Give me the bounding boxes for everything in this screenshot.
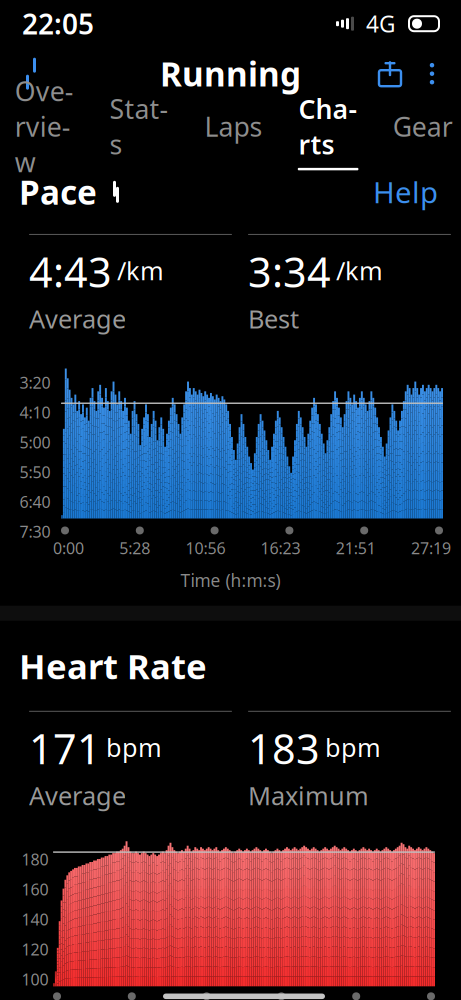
staticText: 7:30 <box>19 521 50 542</box>
button[interactable]: Share <box>367 51 413 97</box>
staticText: 100 <box>21 969 48 990</box>
staticText: 16:23 <box>261 537 301 559</box>
staticText: 3:20 <box>19 372 50 393</box>
staticText: 4:43 <box>29 244 112 299</box>
staticText: Overview <box>15 73 74 179</box>
staticText: 183 <box>248 721 320 776</box>
staticText: 0:00 <box>53 537 84 559</box>
staticText: 5:00 <box>19 432 50 453</box>
staticText: bpm <box>106 730 162 764</box>
staticText: 10:56 <box>185 537 225 559</box>
staticText: /km <box>117 254 164 287</box>
staticText: Laps <box>204 109 262 144</box>
staticText: 120 <box>21 939 48 960</box>
button[interactable]: Back <box>10 51 52 97</box>
staticText: Pace <box>19 170 97 214</box>
staticText: 22:05 <box>22 5 94 42</box>
staticText: 140 <box>21 909 48 930</box>
staticText: /km <box>336 254 383 287</box>
staticText: 6:40 <box>19 491 50 512</box>
staticText: 5:50 <box>19 461 50 483</box>
button[interactable]: Stats <box>101 85 177 170</box>
staticText: 160 <box>21 879 48 900</box>
staticText: Stats <box>109 91 168 162</box>
staticText: 171 <box>29 721 101 776</box>
staticText: Gear <box>393 109 453 144</box>
staticText: Time (h:m:s) <box>180 569 280 592</box>
button[interactable]: More options <box>413 51 451 97</box>
button[interactable]: Pace <box>19 162 133 222</box>
button[interactable]: Help <box>369 164 442 219</box>
staticText: Maximum <box>248 779 369 812</box>
staticText: 27:19 <box>411 537 451 559</box>
staticText: 4:10 <box>19 402 50 423</box>
button[interactable]: Gear <box>384 103 461 153</box>
button[interactable]: Laps <box>195 103 272 153</box>
staticText: 21:51 <box>336 537 376 559</box>
staticText: Running <box>160 52 301 96</box>
staticText: Best <box>248 302 299 335</box>
staticText: 5:28 <box>119 537 150 559</box>
button[interactable]: Overview <box>6 67 83 188</box>
staticText: Average <box>29 302 126 335</box>
button[interactable]: Charts <box>290 85 366 170</box>
staticText: 180 <box>21 849 48 870</box>
staticText: Help <box>373 172 438 211</box>
staticText: bpm <box>325 730 381 764</box>
staticText: Charts <box>299 91 358 162</box>
staticText: Average <box>29 779 126 812</box>
staticText: Heart Rate <box>19 643 207 689</box>
staticText: 4G <box>366 9 396 39</box>
staticText: 3:34 <box>248 244 331 299</box>
